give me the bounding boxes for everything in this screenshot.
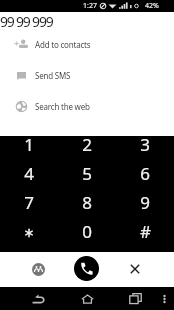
button[interactable]: Contacts: [27, 258, 50, 281]
staticText: #: [140, 220, 151, 243]
staticText: Send SMS: [35, 70, 71, 81]
button[interactable]: More options: [157, 289, 172, 308]
staticText: 1: [24, 133, 34, 156]
button[interactable]: 5: [58, 165, 116, 194]
button[interactable]: 7: [0, 194, 58, 223]
button[interactable]: 2: [58, 136, 116, 165]
button[interactable]: 4: [0, 165, 58, 194]
button[interactable]: Back: [28, 289, 49, 308]
button[interactable]: Add to contacts: [0, 29, 174, 60]
button[interactable]: Send SMS: [0, 60, 174, 91]
button[interactable]: 8: [58, 194, 116, 223]
button[interactable]: 3: [116, 136, 174, 165]
button[interactable]: 1: [0, 136, 58, 165]
staticText: 42%: [145, 1, 159, 11]
staticText: 9: [140, 191, 150, 214]
button[interactable]: Backspace: [124, 258, 146, 280]
button[interactable]: 9: [116, 194, 174, 223]
button[interactable]: Home: [77, 289, 98, 308]
staticText: 7: [24, 191, 34, 214]
staticText: 1:27: [83, 1, 97, 11]
staticText: 8: [82, 191, 92, 214]
staticText: Search the web: [35, 101, 90, 112]
button[interactable]: 6: [116, 165, 174, 194]
button[interactable]: Call: [74, 256, 99, 281]
staticText: 4: [24, 162, 34, 185]
staticText: 3: [140, 133, 150, 156]
staticText: 6: [140, 162, 150, 185]
staticText: 5: [82, 162, 92, 185]
staticText: 99 99 999: [0, 12, 53, 29]
button[interactable]: 0: [58, 223, 116, 252]
button[interactable]: [0, 223, 58, 252]
button[interactable]: Search the web: [0, 91, 174, 122]
staticText: Add to contacts: [35, 39, 91, 50]
staticText: 2: [82, 133, 92, 156]
staticText: 0: [82, 220, 92, 243]
button[interactable]: #: [116, 223, 174, 252]
button[interactable]: Recents: [125, 289, 146, 308]
